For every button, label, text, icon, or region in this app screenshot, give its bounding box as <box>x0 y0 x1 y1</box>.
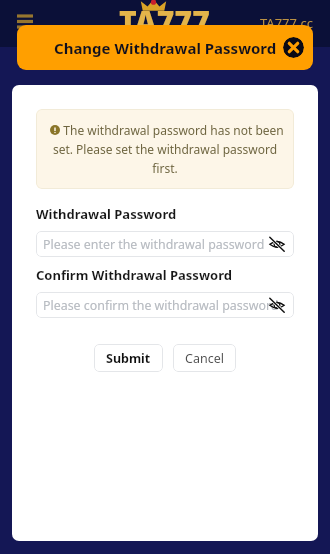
button[interactable]: Submit <box>94 344 163 372</box>
staticText: Cancel <box>185 350 224 367</box>
staticText: Please enter the withdrawal password <box>43 236 265 253</box>
staticText: Please confirm the withdrawal password <box>43 297 279 314</box>
staticText: TA777.cc <box>260 14 313 32</box>
button[interactable]: Menu <box>12 8 38 34</box>
staticText: TA777 <box>119 1 211 42</box>
staticText: Withdrawal Password <box>36 205 177 223</box>
staticText: Confirm Withdrawal Password <box>36 266 232 284</box>
button[interactable]: Show password <box>268 235 286 253</box>
staticText: The withdrawal password has not been set… <box>46 122 284 176</box>
staticText: Submit <box>106 350 151 367</box>
button[interactable]: Change Withdrawal Password <box>17 25 313 70</box>
button[interactable]: Please enter the withdrawal password <box>36 231 294 257</box>
button[interactable]: Please confirm the withdrawal password <box>36 292 294 318</box>
button[interactable]: Show password <box>268 296 286 314</box>
staticText: Change Withdrawal Password <box>54 38 277 58</box>
button[interactable]: Cancel <box>173 344 236 372</box>
button[interactable]: Close <box>283 37 304 58</box>
